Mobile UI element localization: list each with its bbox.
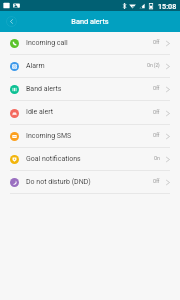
button[interactable]: Goal notifications bbox=[0, 148, 180, 171]
button[interactable]: Idle alert bbox=[0, 101, 180, 125]
staticText: Band alerts bbox=[26, 85, 62, 93]
staticText: Off bbox=[153, 40, 160, 45]
staticText: Off bbox=[153, 179, 160, 184]
button[interactable]: Band alerts bbox=[0, 78, 180, 101]
button[interactable]: Incoming SMS bbox=[0, 125, 180, 148]
button[interactable]: Alarm bbox=[0, 55, 180, 78]
staticText: 15:08 bbox=[158, 2, 177, 10]
staticText: On (2) bbox=[147, 63, 160, 68]
staticText: Incoming call bbox=[26, 39, 68, 47]
staticText: Off bbox=[153, 86, 160, 91]
staticText: Goal notifications bbox=[26, 155, 81, 163]
staticText: Alarm bbox=[26, 62, 45, 70]
staticText: Do not disturb (DND) bbox=[26, 178, 91, 186]
staticText: Band alerts bbox=[71, 17, 109, 26]
staticText: Off bbox=[153, 110, 160, 115]
button[interactable]: Do not disturb (DND) bbox=[0, 171, 180, 194]
staticText: Incoming SMS bbox=[26, 132, 72, 140]
staticText: Off bbox=[153, 133, 160, 138]
button[interactable]: Back bbox=[6, 16, 17, 27]
button[interactable]: Incoming call bbox=[0, 32, 180, 55]
staticText: Idle alert bbox=[26, 108, 54, 116]
staticText: On bbox=[154, 156, 160, 161]
